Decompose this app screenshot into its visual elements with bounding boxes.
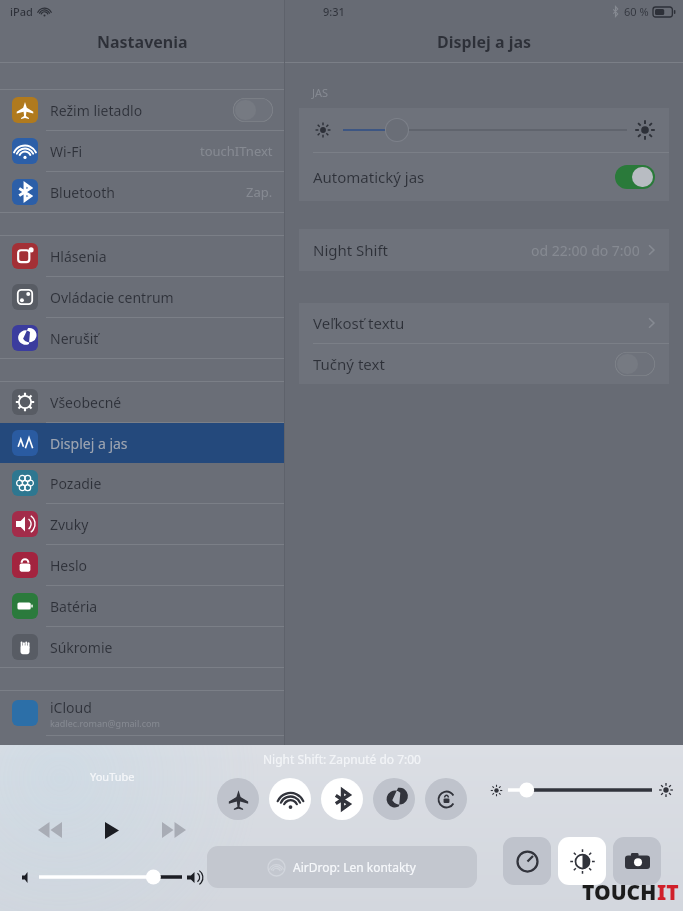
button[interactable]: Next <box>156 812 192 848</box>
staticText: iPad <box>10 4 33 19</box>
button[interactable]: Heslo <box>0 545 285 585</box>
button[interactable]: Wi-Fi <box>269 778 311 820</box>
staticText: Automatický jas <box>313 167 615 187</box>
staticText: Tučný text <box>313 354 615 374</box>
button[interactable]: Rotation lock <box>425 778 467 820</box>
staticText: IT <box>657 878 679 907</box>
staticText: 60 % <box>624 4 649 19</box>
staticText: iCloud <box>50 698 92 717</box>
button[interactable]: Ovládacie centrum <box>0 277 285 317</box>
staticText: TOUCH <box>582 878 657 907</box>
button[interactable]: Zvuky <box>0 504 285 544</box>
button[interactable] <box>233 98 273 122</box>
button[interactable]: Automatický jas <box>299 153 669 201</box>
staticText: Zvuky <box>50 515 89 534</box>
staticText: AirDrop: Len kontakty <box>293 859 416 875</box>
staticText: touchITnext <box>200 142 273 160</box>
button[interactable]: Bluetooth <box>0 172 285 212</box>
button[interactable]: Batéria <box>0 586 285 626</box>
staticText: Batéria <box>50 597 98 616</box>
button[interactable]: Wi-Fi <box>0 131 285 171</box>
staticText: Nerušiť <box>50 329 99 348</box>
staticText: 9:31 <box>323 4 345 19</box>
button[interactable]: Všeobecné <box>0 382 285 422</box>
staticText: JAS <box>312 85 329 100</box>
button[interactable]: Play <box>94 812 130 848</box>
staticText: Hlásenia <box>50 247 107 266</box>
staticText: Ovládacie centrum <box>50 288 174 307</box>
button[interactable]: Previous <box>32 812 68 848</box>
button[interactable]: Tučný text <box>299 344 669 384</box>
staticText: Nastavenia <box>97 31 188 53</box>
staticText: Bluetooth <box>50 183 115 202</box>
button[interactable] <box>615 165 655 189</box>
staticText: Súkromie <box>50 638 113 657</box>
button[interactable]: Pozadie <box>0 463 285 503</box>
staticText: Displej a jas <box>437 31 532 53</box>
staticText: od 22:00 do 7:00 <box>531 241 640 260</box>
button[interactable]: Airplane mode <box>217 778 259 820</box>
staticText: Displej a jas <box>50 434 128 453</box>
staticText: Heslo <box>50 556 88 575</box>
staticText: YouTube <box>90 769 135 784</box>
button[interactable]: Veľkosť textu <box>299 303 669 343</box>
button[interactable]: Night Shift <box>558 837 606 885</box>
staticText: Zap. <box>246 183 273 201</box>
staticText: Pozadie <box>50 474 102 493</box>
staticText: Veľkosť textu <box>313 313 648 333</box>
button[interactable]: Do not disturb <box>373 778 415 820</box>
button[interactable]: Hlásenia <box>0 236 285 276</box>
button[interactable]: Režim lietadlo <box>0 90 285 130</box>
button[interactable] <box>615 352 655 376</box>
button[interactable]: Camera <box>613 837 661 885</box>
button[interactable]: iCloud <box>0 691 285 735</box>
button[interactable]: AirDrop: Len kontakty <box>207 846 477 888</box>
staticText: kadlec.roman@gmail.com <box>50 717 160 729</box>
button[interactable]: Night Shift <box>299 229 669 271</box>
button[interactable]: Timer <box>503 837 551 885</box>
button[interactable]: Súkromie <box>0 627 285 667</box>
staticText: Všeobecné <box>50 393 122 412</box>
button[interactable]: Bluetooth <box>321 778 363 820</box>
button[interactable]: Displej a jas <box>0 423 285 463</box>
staticText: Wi-Fi <box>50 142 83 161</box>
staticText: Night Shift: Zapnuté do 7:00 <box>263 751 421 767</box>
button[interactable]: Nerušiť <box>0 318 285 358</box>
staticText: Režim lietadlo <box>50 101 143 120</box>
staticText: Night Shift <box>313 240 531 260</box>
